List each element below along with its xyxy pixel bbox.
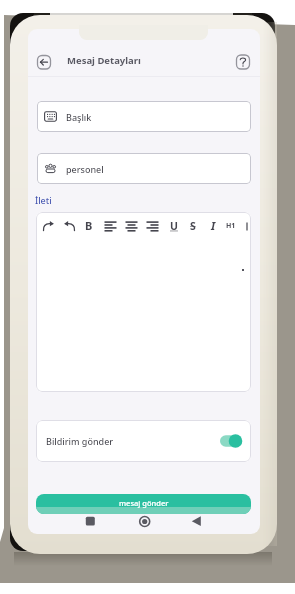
staticText: S bbox=[190, 219, 196, 233]
staticText: Mesaj Detayları bbox=[67, 54, 141, 67]
button[interactable] bbox=[35, 53, 53, 71]
staticText: U bbox=[170, 219, 178, 233]
button[interactable]: mesaj gönder bbox=[36, 494, 251, 514]
button[interactable] bbox=[188, 513, 205, 530]
button[interactable] bbox=[82, 513, 99, 530]
staticText: Bildirim gönder bbox=[46, 435, 114, 447]
staticText: personel bbox=[66, 163, 104, 175]
staticText: H1 bbox=[226, 221, 236, 231]
button[interactable] bbox=[234, 53, 252, 71]
button[interactable]: Başlık bbox=[37, 101, 251, 132]
staticText: I bbox=[211, 218, 216, 233]
button[interactable] bbox=[136, 513, 153, 530]
button[interactable]: personel bbox=[37, 153, 251, 184]
staticText: mesaj gönder bbox=[119, 498, 169, 508]
button[interactable]: Bildirim gönder bbox=[36, 420, 251, 462]
button[interactable] bbox=[36, 212, 251, 392]
staticText: İleti bbox=[35, 194, 52, 206]
staticText: B bbox=[85, 218, 93, 233]
staticText: Başlık bbox=[66, 111, 92, 123]
